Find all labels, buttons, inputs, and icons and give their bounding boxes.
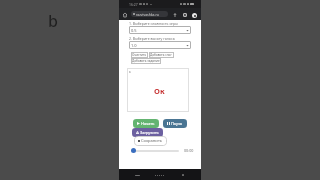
staticText: Сохранить bbox=[141, 138, 163, 144]
staticText: razvivashka.ru bbox=[136, 12, 159, 17]
button[interactable]: Home bbox=[155, 170, 165, 180]
staticText: Ок bbox=[154, 86, 165, 96]
button[interactable]: 1.0 bbox=[129, 41, 191, 49]
button[interactable]: Recents bbox=[178, 170, 188, 180]
button[interactable]: Добавить задание bbox=[132, 59, 160, 63]
button[interactable]: Добавить слог bbox=[150, 53, 173, 57]
button[interactable]: Очистить bbox=[132, 53, 147, 57]
staticText: 1. Выберите сложность игры bbox=[129, 21, 178, 26]
button[interactable]: Home bbox=[121, 11, 129, 19]
staticText: Добавить слог bbox=[150, 53, 173, 57]
staticText: Загрузить bbox=[140, 130, 159, 135]
staticText: 16:27 bbox=[129, 2, 138, 7]
button[interactable]: Начать bbox=[137, 121, 155, 126]
button[interactable]: Playback position bbox=[131, 148, 136, 153]
button[interactable]: Пауза bbox=[167, 121, 183, 126]
button[interactable]: Back bbox=[132, 170, 142, 180]
staticText: Очистить bbox=[132, 53, 147, 57]
button[interactable]: Share bbox=[171, 11, 179, 19]
button[interactable]: razvivashka.ru bbox=[131, 11, 168, 17]
button[interactable]: Загрузить bbox=[136, 130, 159, 135]
button[interactable]: Tabs bbox=[181, 11, 189, 19]
button[interactable]: 0.5 bbox=[129, 26, 191, 34]
staticText: ь bbox=[129, 69, 131, 74]
staticText: b bbox=[48, 10, 58, 32]
staticText: 2. Выберите высоту голоса bbox=[129, 36, 175, 41]
button[interactable]: Account bbox=[190, 11, 198, 19]
staticText: 3 bbox=[184, 13, 186, 17]
staticText: Начать bbox=[141, 121, 155, 126]
staticText: 1.0 bbox=[131, 43, 137, 48]
staticText: Добавить задание bbox=[132, 59, 160, 63]
staticText: 00:00 bbox=[184, 148, 194, 153]
staticText: Пауза bbox=[171, 121, 183, 126]
staticText: 0.5 bbox=[131, 28, 137, 33]
button[interactable]: Сохранить bbox=[138, 138, 163, 144]
